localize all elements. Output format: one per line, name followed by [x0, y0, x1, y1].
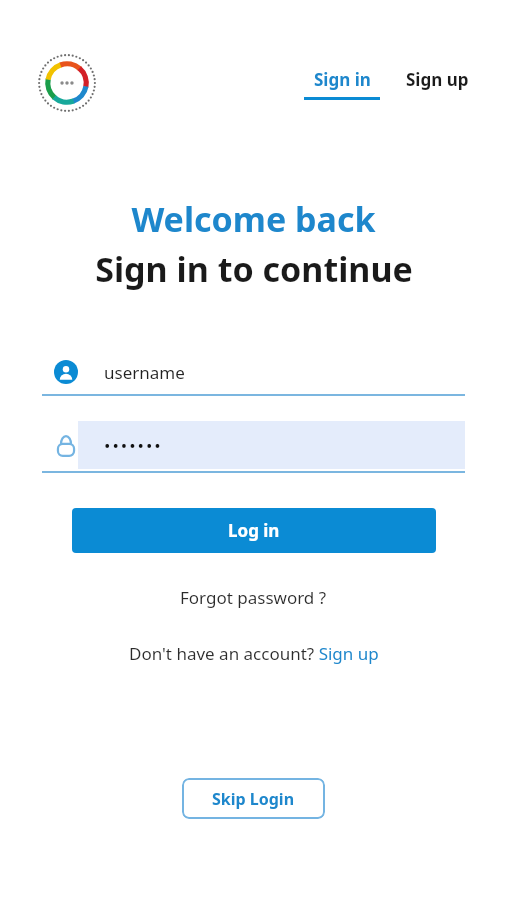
staticText: Welcome back — [131, 196, 376, 242]
staticText: Sign up — [406, 68, 469, 91]
staticText: Log in — [228, 519, 280, 542]
button[interactable]: Don't have an account? Sign up — [119, 638, 389, 669]
button[interactable]: Skip Login — [182, 778, 325, 819]
other: VCASA logo — [36, 52, 98, 114]
staticText: Forgot password ? — [180, 586, 327, 609]
staticText: ••••••• — [104, 434, 163, 457]
button[interactable]: ••••••• — [42, 421, 465, 469]
staticText: Sign in to continue — [95, 246, 413, 292]
staticText: Don't have an account? Sign up — [129, 642, 379, 665]
button[interactable]: Log in — [72, 508, 436, 553]
button[interactable]: Forgot password ? — [170, 582, 337, 613]
staticText: username — [104, 361, 185, 384]
button[interactable]: Sign up — [398, 64, 477, 95]
staticText: Sign in — [314, 68, 371, 91]
staticText: Skip Login — [212, 788, 295, 810]
button[interactable]: Sign in — [296, 64, 388, 104]
button[interactable]: username — [42, 348, 465, 396]
